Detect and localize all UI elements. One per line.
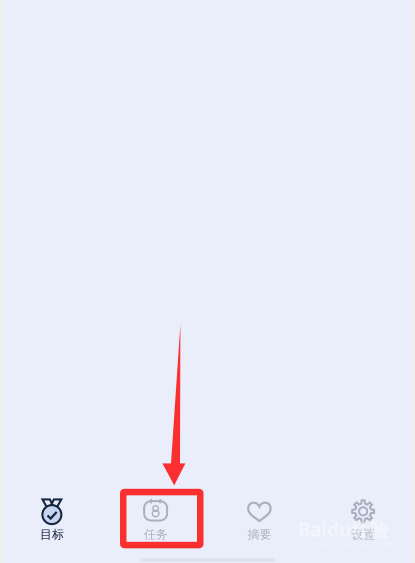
button[interactable]: 任务 bbox=[104, 498, 208, 542]
button[interactable]: 目标 bbox=[0, 498, 104, 542]
staticText: 目标 bbox=[40, 527, 64, 542]
staticText: Baidu经验 bbox=[298, 517, 389, 542]
staticText: jingyan.baidu.com bbox=[298, 537, 393, 551]
staticText: 设置 bbox=[351, 527, 375, 542]
staticText: 摘要 bbox=[247, 527, 271, 542]
staticText: 任务 bbox=[144, 527, 168, 542]
button[interactable]: 摘要 bbox=[207, 498, 311, 542]
button[interactable]: 设置 bbox=[311, 498, 415, 542]
